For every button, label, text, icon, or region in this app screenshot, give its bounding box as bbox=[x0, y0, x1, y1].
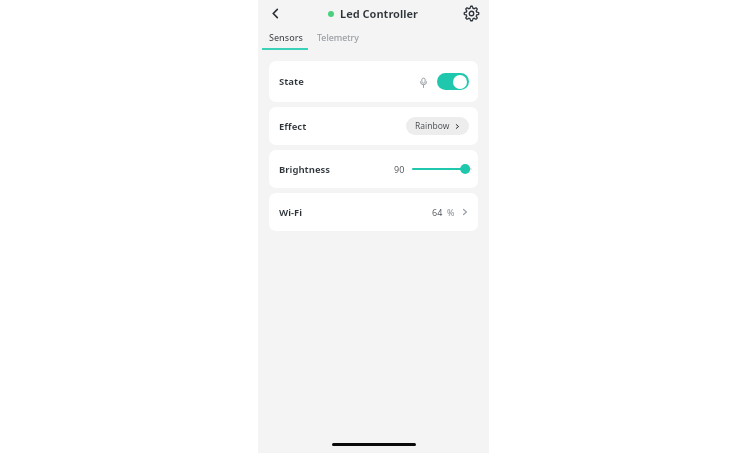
staticText: State bbox=[279, 75, 304, 88]
staticText: Led Controller bbox=[340, 6, 419, 21]
button[interactable]: State bbox=[269, 61, 478, 102]
staticText: Telemetry bbox=[317, 31, 359, 43]
staticText: Wi-Fi bbox=[279, 206, 303, 219]
button[interactable]: Sensors bbox=[262, 26, 310, 48]
button[interactable]: Voice input bbox=[415, 74, 431, 90]
staticText: 64 bbox=[432, 206, 443, 218]
staticText: 90 bbox=[394, 163, 405, 175]
staticText: Sensors bbox=[269, 31, 303, 43]
staticText: Effect bbox=[279, 120, 307, 133]
staticText: Brightness bbox=[279, 163, 331, 176]
button[interactable]: Settings bbox=[460, 2, 482, 24]
button[interactable]: Back bbox=[264, 2, 286, 24]
button[interactable]: Toggle state bbox=[437, 73, 469, 90]
button[interactable]: Brightness bbox=[269, 150, 478, 188]
button[interactable]: Brightness slider bbox=[413, 161, 471, 177]
button[interactable]: Rainbow bbox=[406, 117, 469, 135]
staticText: % bbox=[447, 206, 455, 218]
button[interactable]: Effect bbox=[269, 107, 478, 145]
staticText: Rainbow bbox=[415, 120, 450, 132]
button[interactable]: Wi-Fi bbox=[269, 193, 478, 231]
button[interactable]: Telemetry bbox=[310, 26, 366, 48]
